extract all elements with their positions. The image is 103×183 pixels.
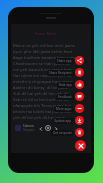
staticText: Update app <box>54 119 72 123</box>
staticText: Maine se yeh mil kar meri jaane <box>13 43 76 49</box>
staticText: More apps <box>56 107 72 111</box>
button[interactable]: Get an quote <box>51 128 84 137</box>
staticText: Har ujhee koi nazarein phir se <box>13 73 72 79</box>
staticText: Rate app <box>59 83 72 87</box>
staticText: me yeh baarish aur jaana hain <box>13 67 73 73</box>
button[interactable]: Previous <box>37 125 44 132</box>
button[interactable]: Rate app <box>57 80 84 89</box>
staticText: ofaraayde bhi Teraa jaana hai <box>13 103 71 109</box>
button[interactable]: Album art <box>15 125 21 131</box>
staticText: Chaahkoone se hain jaane ke <box>13 61 71 67</box>
button[interactable]: Next <box>52 125 59 132</box>
button[interactable]: More apps <box>54 104 84 113</box>
staticText: meethi si chupayaa hain jaane <box>13 79 73 85</box>
staticText: yeh dil hai yeh dil hai naya <box>13 115 65 121</box>
button[interactable]: Share app <box>55 56 84 65</box>
staticText: Sab ish dil to hai kuch hai na <box>13 97 69 103</box>
staticText: Feedback <box>58 95 72 99</box>
staticText: Ringtone <box>23 128 35 132</box>
button[interactable]: Play <box>44 124 52 132</box>
staticText: Share Recipient <box>49 71 72 75</box>
button[interactable]: Feedback <box>56 92 84 101</box>
staticText: Aakhiri dil baray, dil ke paas <box>13 85 68 91</box>
button[interactable]: Share Recipient <box>47 68 84 77</box>
staticText: bhash hai kabhi hai jaana tha <box>13 109 71 115</box>
staticText: Sukoon <box>23 124 34 128</box>
button[interactable]: Power Mode <box>11 24 91 39</box>
staticText: Power Mode <box>35 31 57 36</box>
button[interactable]: Close menu <box>75 140 86 151</box>
staticText: Aage badhate baatein hain naye <box>13 55 77 61</box>
staticText: Yuh dil hai yeh dil hai yeh dil <box>13 91 69 97</box>
staticText: Share app <box>57 59 72 63</box>
staticText: kyun phir likh jaata kehte hain <box>13 49 73 55</box>
button[interactable]: Update app <box>52 116 84 125</box>
staticText: Get an quote <box>53 131 72 135</box>
